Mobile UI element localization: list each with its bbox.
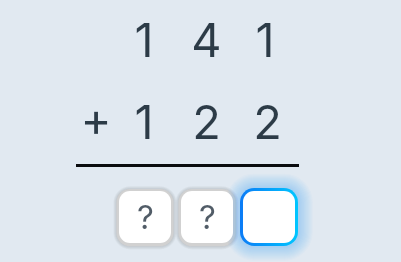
staticText: 1 (134, 11, 154, 68)
button[interactable]: Empty hundreds answer box (119, 191, 171, 243)
button[interactable]: Empty tens answer box (181, 191, 233, 243)
staticText: 1 (255, 11, 275, 68)
staticText: 2 (192, 93, 221, 150)
staticText: ? (137, 197, 154, 237)
staticText: + (80, 90, 112, 147)
staticText: 2 (253, 93, 282, 150)
button[interactable]: Active units answer box (240, 188, 298, 246)
staticText: 1 (134, 93, 154, 150)
staticText: ? (199, 197, 216, 237)
staticText: 4 (191, 11, 222, 68)
